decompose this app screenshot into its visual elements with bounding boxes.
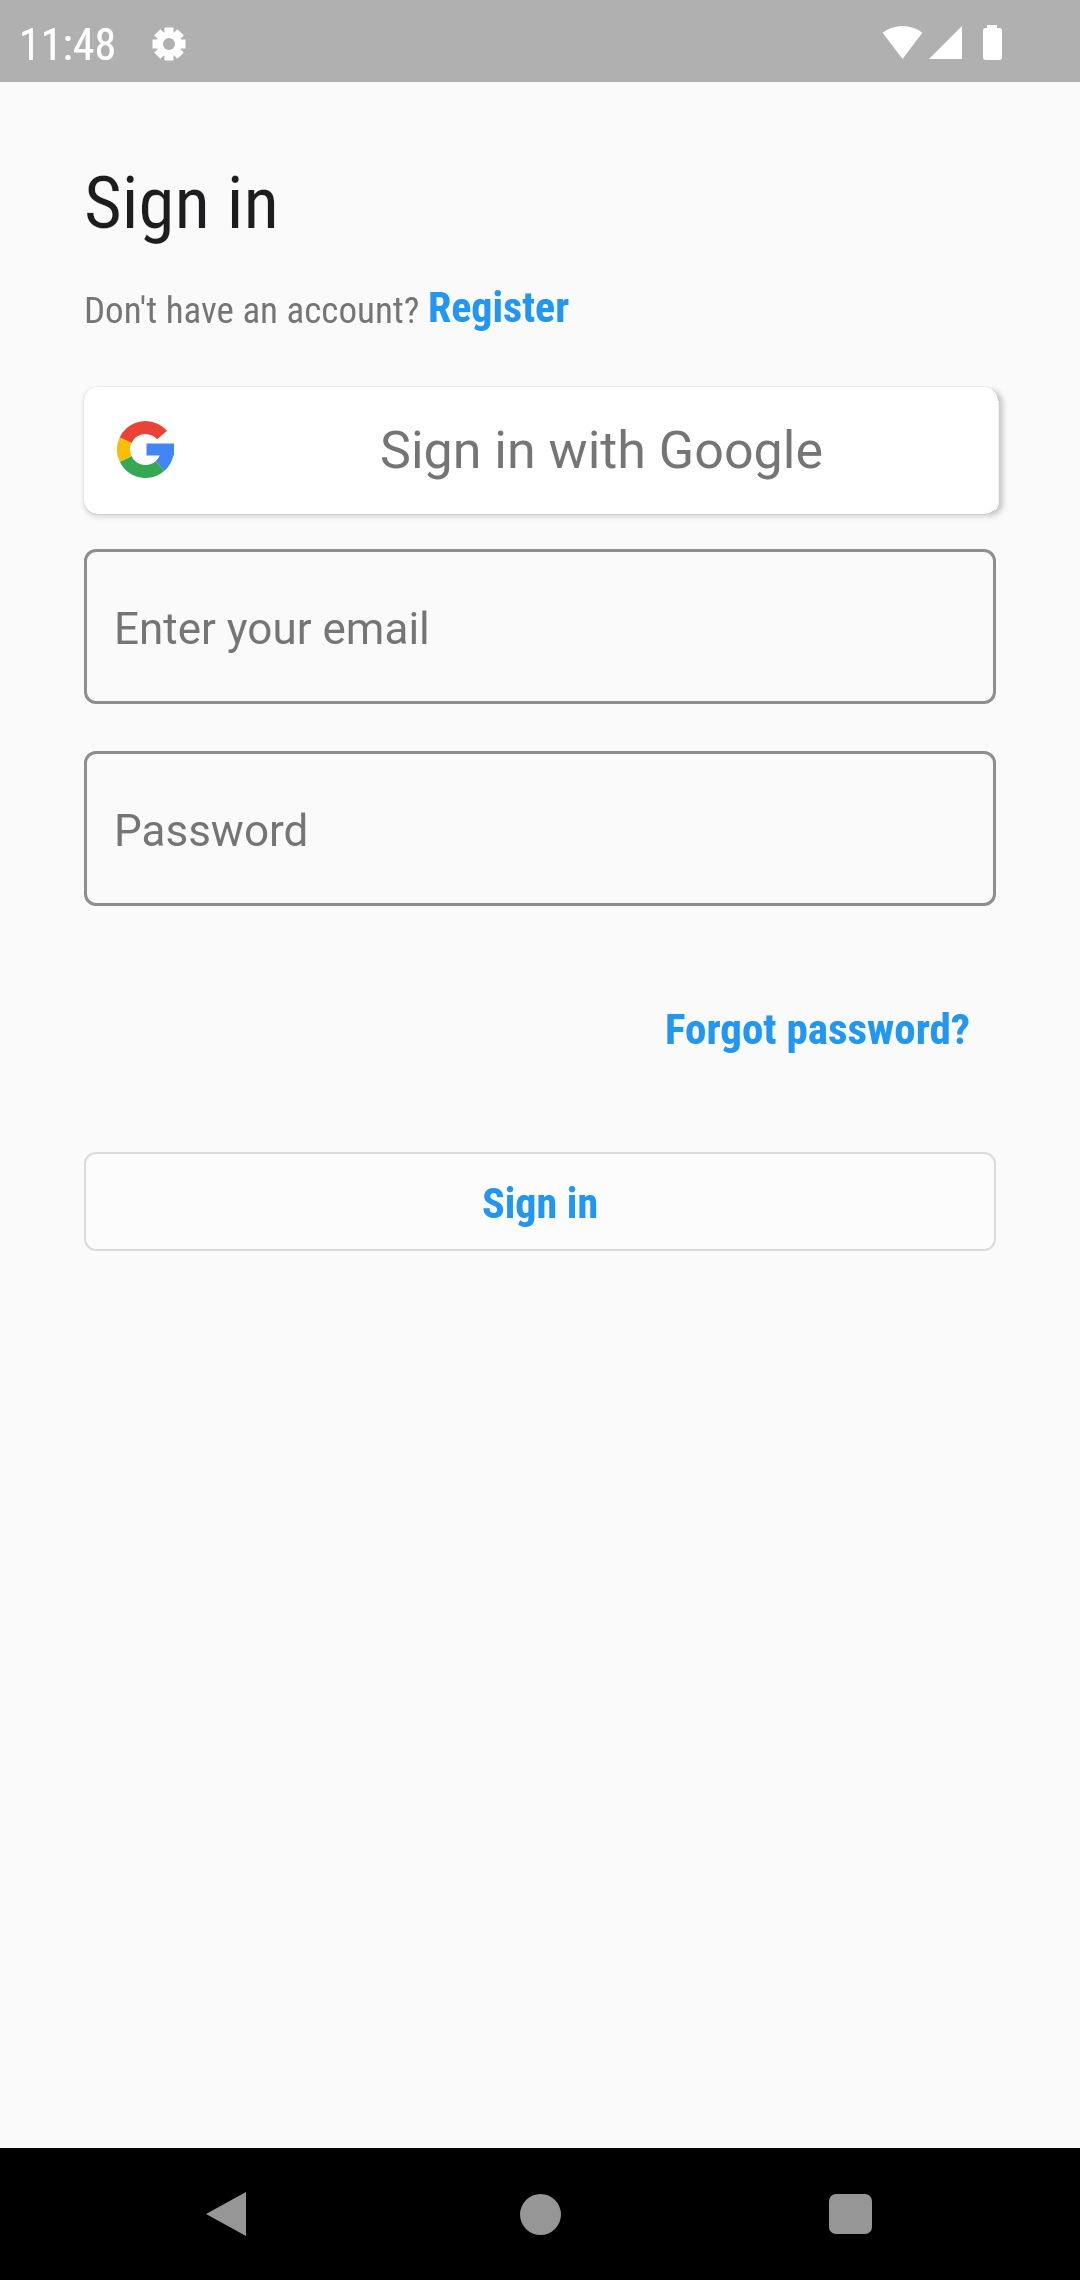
staticText: Don't have an account?: [84, 289, 428, 332]
button[interactable]: Sign in with Google: [84, 387, 998, 514]
button[interactable]: Register: [428, 283, 570, 332]
button[interactable]: Forgot password?: [665, 1004, 971, 1054]
button[interactable]: Enter your email: [84, 549, 996, 704]
button[interactable]: [186, 2192, 266, 2236]
button[interactable]: [500, 2192, 580, 2236]
staticText: Enter your email: [114, 603, 430, 655]
staticText: Sign in: [84, 160, 279, 246]
staticText: Sign in: [482, 1179, 599, 1228]
button[interactable]: [810, 2192, 890, 2236]
staticText: 11:48: [19, 19, 117, 71]
staticText: Password: [114, 805, 309, 857]
button[interactable]: Sign in: [84, 1152, 996, 1251]
button[interactable]: Password: [84, 751, 996, 906]
staticText: Sign in with Google: [380, 420, 824, 481]
